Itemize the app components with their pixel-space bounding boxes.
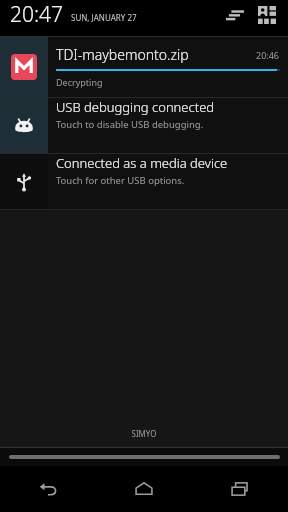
button[interactable]: Quick settings	[254, 2, 280, 28]
staticText: TDI-maybemonto.zip	[56, 45, 256, 64]
staticText: 20:47	[10, 0, 64, 29]
button[interactable]: Connected as a media device	[0, 154, 288, 209]
staticText: SIMYO	[0, 428, 288, 439]
button[interactable]: USB debugging connected	[0, 98, 288, 153]
button[interactable]: Close notification shade	[0, 448, 288, 466]
staticText: Connected as a media device	[56, 154, 228, 172]
button[interactable]: Clear all notifications	[222, 2, 248, 28]
staticText: Touch for other USB options.	[56, 174, 185, 187]
button[interactable]: Home	[96, 466, 192, 512]
button[interactable]: Recent apps	[192, 466, 288, 512]
button[interactable]: TDI-maybemonto.zip	[0, 37, 288, 97]
staticText: 20:46	[256, 49, 280, 61]
staticText: Touch to disable USB debugging.	[56, 118, 204, 131]
staticText: Decrypting	[56, 76, 103, 88]
staticText: SUN, JANUARY 27	[71, 12, 137, 23]
staticText: USB debugging connected	[56, 98, 215, 116]
button[interactable]: Back	[0, 466, 96, 512]
